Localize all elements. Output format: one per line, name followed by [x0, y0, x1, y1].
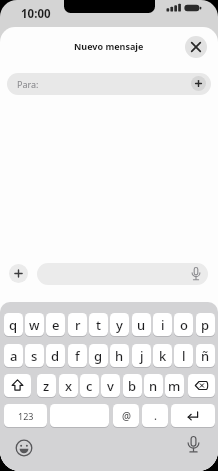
button[interactable]: n — [144, 374, 163, 397]
staticText: a — [10, 347, 18, 365]
button[interactable]: . — [142, 404, 168, 427]
button[interactable]: m — [165, 374, 184, 397]
button[interactable]: d — [46, 344, 65, 367]
staticText: e — [52, 316, 60, 334]
staticText: z — [43, 377, 50, 395]
staticText: g — [94, 347, 103, 365]
button[interactable]: l — [174, 344, 193, 367]
staticText: @ — [122, 409, 131, 423]
staticText: r — [75, 316, 81, 334]
staticText: o — [180, 316, 188, 334]
staticText: y — [116, 316, 123, 334]
staticText: x — [65, 377, 73, 395]
button[interactable] — [37, 263, 208, 285]
staticText: 10:00 — [21, 6, 51, 22]
button[interactable] — [185, 36, 207, 58]
button[interactable]: v — [101, 374, 120, 397]
button[interactable]: q — [4, 313, 23, 336]
button[interactable] — [191, 76, 206, 91]
button[interactable]: y — [110, 313, 129, 336]
button[interactable]: t — [89, 313, 108, 336]
staticText: c — [86, 377, 93, 395]
button[interactable]: Para: — [7, 73, 211, 95]
staticText: m — [168, 377, 181, 395]
button[interactable]: 123 — [4, 404, 47, 427]
button[interactable]: b — [123, 374, 142, 397]
staticText: v — [107, 377, 114, 395]
staticText: j — [140, 347, 144, 365]
staticText: l — [182, 347, 186, 365]
staticText: h — [115, 347, 124, 365]
staticText: d — [51, 347, 60, 365]
button[interactable] — [171, 404, 215, 427]
button[interactable]: s — [25, 344, 44, 367]
button[interactable] — [14, 440, 34, 460]
button[interactable]: u — [132, 313, 151, 336]
staticText: k — [159, 347, 167, 365]
staticText: w — [29, 316, 40, 334]
staticText: n — [149, 377, 158, 395]
staticText: ñ — [201, 347, 210, 365]
button[interactable]: z — [37, 374, 56, 397]
button[interactable]: ñ — [196, 344, 215, 367]
button[interactable]: x — [59, 374, 78, 397]
button[interactable]: h — [110, 344, 129, 367]
button[interactable]: g — [89, 344, 108, 367]
button[interactable] — [188, 374, 215, 397]
button[interactable] — [50, 404, 109, 427]
button[interactable] — [184, 435, 204, 455]
button[interactable]: j — [132, 344, 151, 367]
button[interactable]: a — [4, 344, 23, 367]
staticText: i — [161, 316, 165, 334]
button[interactable]: c — [80, 374, 99, 397]
staticText: Para: — [17, 78, 39, 90]
staticText: . — [154, 408, 157, 423]
button[interactable] — [9, 264, 28, 283]
staticText: b — [128, 377, 137, 395]
staticText: s — [31, 347, 38, 365]
button[interactable]: w — [25, 313, 44, 336]
staticText: Nuevo mensaje — [74, 40, 144, 52]
button[interactable]: f — [68, 344, 87, 367]
staticText: 123 — [18, 410, 34, 422]
button[interactable]: r — [68, 313, 87, 336]
button[interactable]: o — [174, 313, 193, 336]
button[interactable]: @ — [113, 404, 139, 427]
staticText: p — [201, 316, 210, 334]
button[interactable]: e — [46, 313, 65, 336]
button[interactable]: k — [153, 344, 172, 367]
staticText: u — [137, 316, 146, 334]
staticText: q — [9, 316, 18, 334]
button[interactable]: i — [153, 313, 172, 336]
button[interactable]: p — [196, 313, 215, 336]
button[interactable] — [4, 374, 31, 397]
staticText: t — [96, 316, 101, 334]
staticText: f — [75, 347, 80, 365]
